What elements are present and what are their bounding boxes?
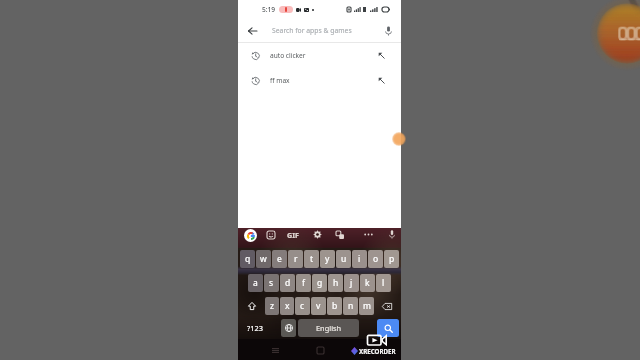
button[interactable]: auto clicker [238, 43, 401, 68]
staticText: Search for apps & games [272, 26, 376, 35]
staticText: o [373, 253, 379, 265]
button[interactable]: v [311, 297, 326, 315]
staticText: ff max [270, 76, 378, 85]
staticText: n [348, 300, 354, 312]
button[interactable]: ff max [238, 68, 401, 93]
button[interactable]: Change language [281, 319, 296, 337]
staticText: d [285, 277, 291, 289]
button[interactable]: Floating recorder [393, 133, 405, 145]
staticText: English [316, 323, 342, 333]
staticText: k [365, 277, 370, 289]
staticText: b [332, 300, 338, 312]
button[interactable]: Voice search [376, 19, 401, 42]
button[interactable]: English [298, 319, 359, 337]
staticText: s [269, 277, 274, 289]
staticText: j [350, 277, 353, 289]
staticText: a [253, 277, 258, 289]
staticText: q [245, 253, 251, 265]
button[interactable]: Recents [267, 342, 283, 358]
button[interactable]: b [327, 297, 342, 315]
button[interactable]: GIF [286, 228, 300, 242]
button[interactable]: x [280, 297, 294, 315]
button[interactable]: k [360, 274, 375, 292]
button[interactable]: r [288, 250, 303, 268]
button[interactable]: h [328, 274, 343, 292]
button[interactable]: d [280, 274, 295, 292]
button[interactable]: Voice input [385, 228, 398, 241]
staticText: ?123 [247, 323, 263, 333]
button[interactable]: Translate [333, 228, 346, 241]
button[interactable]: Search [377, 319, 399, 337]
staticText: GIF [287, 230, 299, 240]
staticText: c [300, 300, 305, 312]
button[interactable]: Stickers [264, 228, 277, 241]
staticText: y [325, 253, 330, 265]
staticText: e [277, 253, 282, 265]
button[interactable]: o [368, 250, 383, 268]
button[interactable]: y [320, 250, 335, 268]
staticText: t [310, 253, 314, 265]
staticText: l [382, 277, 385, 289]
button[interactable]: c [295, 297, 310, 315]
button[interactable]: q [240, 250, 255, 268]
staticText: m [363, 300, 371, 312]
button[interactable]: j [344, 274, 359, 292]
button[interactable]: Back [238, 19, 266, 42]
button[interactable]: Settings [311, 228, 324, 241]
staticText: x [285, 300, 290, 312]
button[interactable]: a [248, 274, 263, 292]
button[interactable]: z [265, 297, 279, 315]
button[interactable]: u [336, 250, 351, 268]
button[interactable]: Home [312, 342, 328, 358]
staticText: h [333, 277, 339, 289]
button[interactable]: Google [243, 228, 257, 242]
staticText: u [341, 253, 347, 265]
button[interactable]: i [352, 250, 367, 268]
button[interactable]: Backspace [375, 297, 399, 315]
button[interactable]: m [359, 297, 374, 315]
staticText: r [294, 253, 298, 265]
button[interactable]: g [312, 274, 327, 292]
button[interactable]: s [264, 274, 279, 292]
staticText: f [302, 277, 305, 289]
button[interactable]: n [343, 297, 358, 315]
button[interactable]: Back [356, 342, 372, 358]
button[interactable]: t [304, 250, 319, 268]
button[interactable]: ?123 [238, 319, 281, 337]
button[interactable]: l [376, 274, 391, 292]
staticText: 5:19 [262, 5, 276, 14]
staticText: XRECORDER [359, 347, 396, 355]
staticText: w [260, 253, 267, 265]
button[interactable]: More options [362, 228, 375, 241]
staticText: g [317, 277, 323, 289]
staticText: auto clicker [270, 51, 378, 60]
button[interactable]: Shift [240, 297, 264, 315]
staticText: z [270, 300, 274, 312]
button[interactable]: e [272, 250, 287, 268]
button[interactable]: p [384, 250, 399, 268]
staticText: p [389, 253, 395, 265]
staticText: i [358, 253, 361, 265]
button[interactable]: w [256, 250, 271, 268]
button[interactable]: f [296, 274, 311, 292]
staticText: v [316, 300, 321, 312]
